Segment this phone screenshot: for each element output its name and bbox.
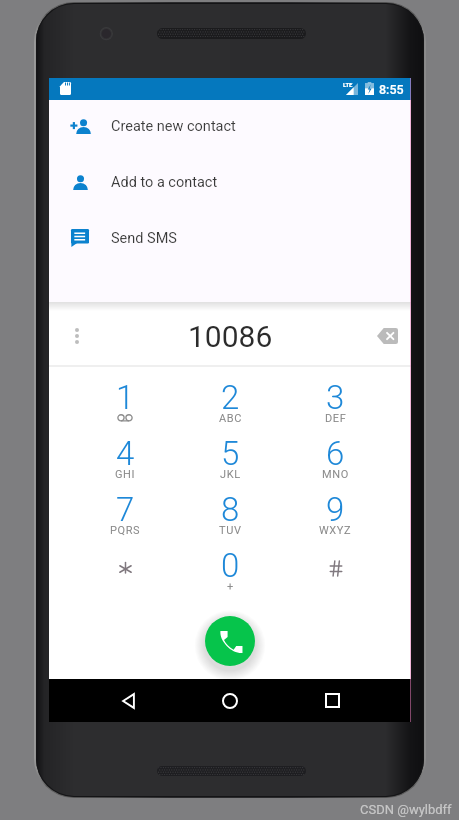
staticText: GHI xyxy=(115,468,136,481)
staticText: + xyxy=(227,580,234,593)
staticText: 6 xyxy=(326,434,345,473)
button[interactable]: 5 xyxy=(178,424,283,480)
button[interactable]: 1 xyxy=(72,368,178,424)
button[interactable]: 9 xyxy=(283,480,388,536)
staticText: 8 xyxy=(221,490,240,529)
button[interactable]: 0 xyxy=(178,536,283,592)
button[interactable]: More options xyxy=(62,309,92,363)
button[interactable]: 2 xyxy=(178,368,283,424)
staticText: 3 xyxy=(326,378,345,417)
staticText: ABC xyxy=(219,412,242,425)
button[interactable]: 6 xyxy=(283,424,388,480)
button[interactable]: 4 xyxy=(72,424,178,480)
button[interactable]: 7 xyxy=(72,480,178,536)
staticText: Create new contact xyxy=(111,118,236,135)
button[interactable]: 3 xyxy=(283,368,388,424)
staticText: 4 xyxy=(116,434,135,473)
staticText: 10086 xyxy=(188,319,273,354)
staticText: 1 xyxy=(116,378,135,417)
staticText: TUV xyxy=(219,524,242,537)
button[interactable]: Send SMS xyxy=(49,210,411,266)
staticText: 9 xyxy=(326,490,345,529)
button[interactable]: Add to a contact xyxy=(49,154,411,210)
staticText: WXYZ xyxy=(319,524,352,537)
button[interactable] xyxy=(72,536,178,592)
button[interactable]: Recents xyxy=(316,679,348,722)
button[interactable]: Home xyxy=(214,679,246,722)
staticText: 7 xyxy=(116,490,135,529)
staticText: 0 xyxy=(221,546,240,585)
staticText: 5 xyxy=(221,434,240,473)
staticText: JKL xyxy=(220,468,241,481)
button[interactable]: Back xyxy=(112,679,144,722)
staticText: CSDN @wylbdff xyxy=(360,802,452,817)
button[interactable]: 8 xyxy=(178,480,283,536)
staticText: PQRS xyxy=(110,524,141,537)
staticText: LTE xyxy=(343,81,353,88)
button[interactable] xyxy=(283,536,388,592)
staticText: Add to a contact xyxy=(111,174,218,191)
staticText: DEF xyxy=(325,412,347,425)
button[interactable]: Call xyxy=(205,616,255,666)
staticText: MNO xyxy=(322,468,349,481)
staticText: 8:55 xyxy=(379,82,404,97)
button[interactable]: Backspace xyxy=(365,309,409,363)
staticText: Send SMS xyxy=(111,230,177,247)
staticText: 2 xyxy=(221,378,240,417)
button[interactable]: Create new contact xyxy=(49,98,411,154)
